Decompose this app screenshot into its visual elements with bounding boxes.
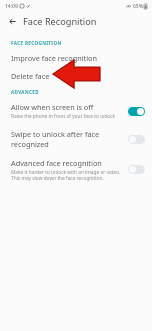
button[interactable]: Improve face recognition xyxy=(0,49,152,66)
staticText: Improve face recognition xyxy=(11,53,97,63)
staticText: Raise the phone in front of your face to… xyxy=(11,113,116,120)
button[interactable]: Delete face xyxy=(0,66,152,85)
staticText: ADVANCED xyxy=(11,89,39,95)
button[interactable]: Swipe to unlock after face recognized xyxy=(0,125,152,154)
button[interactable]: Off xyxy=(128,135,145,144)
staticText: Allow when screen is off xyxy=(11,102,94,112)
button[interactable]: Back xyxy=(6,15,19,28)
staticText: Advanced face recognition xyxy=(11,158,102,168)
button[interactable]: Advanced face recognition xyxy=(0,154,152,186)
staticText: Swipe to unlock after face recognized xyxy=(11,129,124,149)
button[interactable]: Off xyxy=(128,165,145,174)
button[interactable]: Allow when screen is off xyxy=(0,98,152,125)
staticText: 65% xyxy=(133,3,143,10)
staticText: Make it harder to unlock with an image o… xyxy=(11,169,121,181)
staticText: Delete face xyxy=(11,71,50,81)
button[interactable]: On xyxy=(128,107,145,116)
staticText: 14:09 xyxy=(5,3,18,10)
staticText: Face Recognition xyxy=(23,15,97,28)
staticText: FACE RECOGNITION xyxy=(11,40,62,46)
